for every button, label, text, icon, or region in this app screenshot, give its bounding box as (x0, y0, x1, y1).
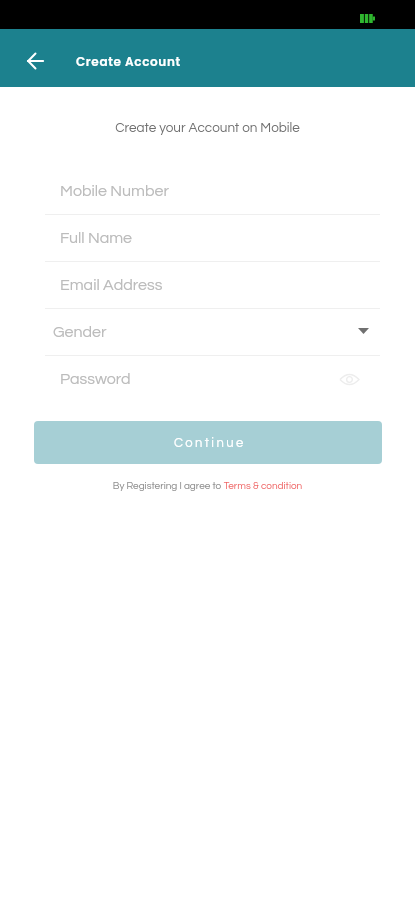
button[interactable]: Gender (45, 309, 380, 356)
staticText: Email Address (60, 277, 163, 293)
button[interactable]: Mobile Number (45, 168, 380, 215)
staticText: Continue (174, 436, 246, 449)
button[interactable]: Full Name (45, 215, 380, 262)
button[interactable]: Continue (34, 421, 382, 464)
button[interactable]: Password (45, 356, 380, 403)
button[interactable]: Email Address (45, 262, 380, 309)
staticText: Create your Account on Mobile (0, 121, 415, 135)
button[interactable]: Show password (335, 369, 363, 389)
staticText: Gender (53, 324, 107, 340)
button[interactable]: Select gender (352, 323, 374, 339)
staticText: Mobile Number (60, 183, 169, 199)
staticText: Password (60, 371, 131, 387)
staticText: Full Name (60, 230, 133, 246)
button[interactable]: Back (19, 45, 51, 77)
staticText: Create Account (76, 53, 181, 70)
button[interactable]: By Registering I agree to Terms & condit… (0, 481, 415, 491)
